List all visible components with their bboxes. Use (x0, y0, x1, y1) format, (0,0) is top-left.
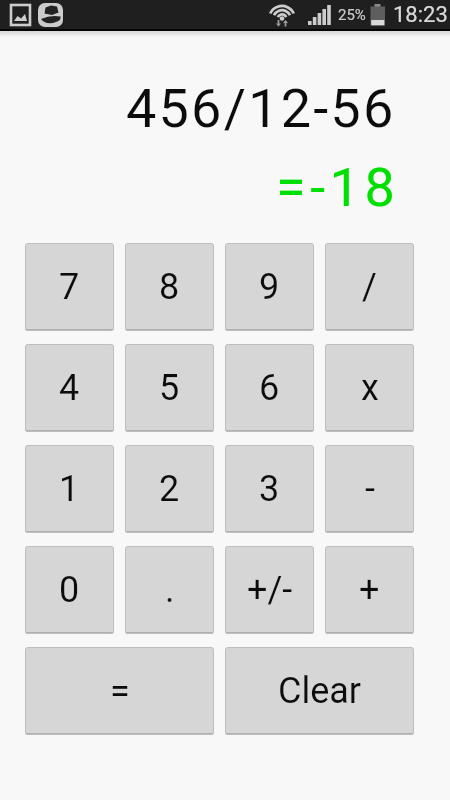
button[interactable]: 4 (25, 344, 114, 432)
button[interactable]: 1 (25, 445, 114, 533)
button[interactable]: - (325, 445, 414, 533)
button[interactable]: / (325, 243, 414, 331)
button[interactable]: 9 (225, 243, 314, 331)
staticText: 3 (259, 468, 280, 510)
staticText: 456/12-56 (126, 77, 396, 140)
button[interactable]: 5 (125, 344, 214, 432)
staticText: x (361, 367, 379, 409)
button[interactable]: 2 (125, 445, 214, 533)
button[interactable]: + (325, 546, 414, 634)
staticText: + (359, 569, 380, 611)
button[interactable]: 8 (125, 243, 214, 331)
button[interactable]: 6 (225, 344, 314, 432)
staticText: 9 (259, 266, 280, 308)
button[interactable]: Clear (225, 647, 414, 735)
button[interactable]: = (25, 647, 214, 735)
staticText: Clear (278, 670, 362, 712)
staticText: 5 (159, 367, 180, 409)
staticText: =-18 (276, 156, 400, 219)
staticText: 2 (159, 468, 180, 510)
staticText: 6 (259, 367, 280, 409)
button[interactable]: 3 (225, 445, 314, 533)
staticText: 4 (59, 367, 80, 409)
button[interactable]: x (325, 344, 414, 432)
button[interactable]: 7 (25, 243, 114, 331)
staticText: 18:23 (393, 2, 448, 28)
staticText: +/- (247, 569, 293, 611)
staticText: 0 (59, 569, 80, 611)
staticText: 25% (338, 6, 366, 24)
button[interactable]: . (125, 546, 214, 634)
staticText: 7 (59, 266, 80, 308)
staticText: = (110, 670, 130, 712)
staticText: 8 (159, 266, 180, 308)
button[interactable]: 0 (25, 546, 114, 634)
staticText: . (165, 569, 175, 611)
staticText: / (362, 266, 377, 308)
staticText: 1 (59, 468, 80, 510)
staticText: - (365, 468, 375, 510)
button[interactable]: +/- (225, 546, 314, 634)
